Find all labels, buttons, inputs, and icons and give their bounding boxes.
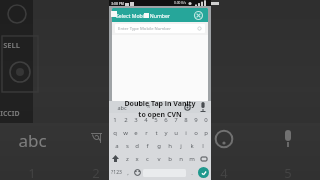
- button[interactable]: p: [201, 126, 211, 139]
- button[interactable]: u: [171, 126, 181, 139]
- button[interactable]: 6: [161, 113, 171, 126]
- button[interactable]: 8: [181, 113, 191, 126]
- button[interactable]: b: [164, 152, 175, 165]
- staticText: 5: [284, 164, 292, 180]
- staticText: 4: [144, 116, 148, 124]
- button[interactable]: j: [175, 139, 186, 152]
- button[interactable]: Shift: [109, 152, 122, 165]
- staticText: 4: [220, 164, 228, 180]
- staticText: 1: [113, 116, 117, 124]
- staticText: abc: [18, 129, 47, 152]
- staticText: q: [113, 129, 117, 137]
- staticText: to open CVN: [138, 110, 182, 120]
- button[interactable]: ,: [123, 165, 132, 180]
- button[interactable]: 0: [201, 113, 211, 126]
- staticText: 3: [156, 164, 164, 180]
- staticText: u: [174, 129, 178, 137]
- staticText: c: [146, 155, 149, 163]
- staticText: x: [135, 155, 139, 163]
- staticText: 6: [164, 116, 168, 124]
- staticText: 0: [204, 116, 208, 124]
- button[interactable]: z: [122, 152, 132, 165]
- staticText: 0.00 K/s: [174, 1, 186, 5]
- staticText: f: [146, 142, 149, 150]
- button[interactable]: 1: [109, 113, 120, 126]
- button[interactable]: m: [186, 152, 197, 165]
- button[interactable]: k: [186, 139, 197, 152]
- staticText: অ: [146, 104, 150, 110]
- staticText: abc: [117, 104, 127, 111]
- staticText: m: [189, 155, 195, 163]
- staticText: 1: [28, 164, 36, 180]
- button[interactable]: v: [153, 152, 164, 165]
- staticText: n: [179, 155, 183, 163]
- button[interactable]: Close: [193, 10, 204, 21]
- button[interactable]: ?123: [109, 165, 123, 180]
- button[interactable]: 4: [141, 113, 151, 126]
- button[interactable]: Enter: [196, 165, 211, 180]
- staticText: l: [202, 142, 204, 150]
- button[interactable]: t: [151, 126, 161, 139]
- button[interactable]: Enter Type Mobile Number: [115, 24, 205, 33]
- button[interactable]: a: [112, 139, 122, 152]
- button[interactable]: 3: [131, 113, 141, 126]
- button[interactable]: Emoji: [132, 165, 142, 180]
- staticText: 8: [184, 116, 188, 124]
- button[interactable]: l: [197, 139, 208, 152]
- staticText: w: [123, 129, 128, 137]
- staticText: 2: [124, 116, 128, 124]
- staticText: SELL: [3, 40, 20, 50]
- staticText: t: [155, 129, 158, 137]
- staticText: p: [204, 129, 208, 137]
- staticText: Select Mobile Number: [116, 12, 170, 19]
- button[interactable]: y: [161, 126, 171, 139]
- button[interactable]: f: [142, 139, 153, 152]
- button[interactable]: অ: [135, 101, 161, 113]
- button[interactable]: e: [131, 126, 141, 139]
- staticText: 9: [194, 116, 198, 124]
- button[interactable]: x: [132, 152, 142, 165]
- button[interactable]: c: [142, 152, 153, 165]
- button[interactable]: g: [153, 139, 164, 152]
- staticText: 7: [174, 116, 178, 124]
- button[interactable]: 7: [171, 113, 181, 126]
- button[interactable]: q: [109, 126, 120, 139]
- button[interactable]: 9: [191, 113, 201, 126]
- staticText: s: [126, 142, 129, 150]
- staticText: k: [190, 142, 194, 150]
- button[interactable]: d: [132, 139, 142, 152]
- button[interactable]: o: [191, 126, 201, 139]
- button[interactable]: abc: [109, 101, 135, 113]
- button[interactable]: n: [175, 152, 186, 165]
- staticText: .: [191, 169, 193, 177]
- staticText: b: [168, 155, 172, 163]
- button[interactable]: 5: [151, 113, 161, 126]
- staticText: ,: [127, 169, 129, 177]
- button[interactable]: h: [164, 139, 175, 152]
- button[interactable]: 2: [120, 113, 131, 126]
- staticText: 3: [134, 116, 138, 124]
- staticText: j: [180, 142, 182, 150]
- staticText: 2: [92, 164, 100, 180]
- button[interactable]: s: [122, 139, 132, 152]
- staticText: 5: [154, 116, 158, 124]
- staticText: h: [168, 142, 172, 150]
- button[interactable]: r: [141, 126, 151, 139]
- staticText: v: [157, 155, 161, 163]
- button[interactable]: Voice input: [195, 101, 211, 113]
- button[interactable]: Backspace: [197, 152, 211, 165]
- button[interactable]: Keyboard settings: [179, 101, 195, 113]
- staticText: y: [164, 129, 168, 137]
- staticText: a: [115, 142, 119, 150]
- staticText: Double Tap in Vanity: [124, 99, 196, 109]
- button[interactable]: w: [120, 126, 131, 139]
- button[interactable]: i: [181, 126, 191, 139]
- staticText: ?123: [111, 169, 122, 176]
- staticText: o: [194, 129, 198, 137]
- staticText: r: [145, 129, 148, 137]
- staticText: ICCID: [0, 109, 20, 119]
- staticText: d: [135, 142, 139, 150]
- staticText: z: [126, 155, 129, 163]
